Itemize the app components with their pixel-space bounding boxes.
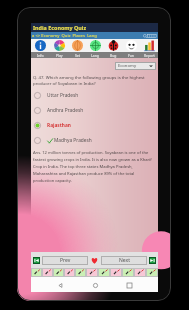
- button[interactable]: Play: [50, 39, 68, 58]
- staticText: Prev: [60, 257, 71, 264]
- button[interactable]: Report: [140, 39, 158, 58]
- button[interactable]: Recent apps: [124, 280, 134, 290]
- button[interactable]: [86, 268, 98, 277]
- button[interactable]: Home: [90, 280, 100, 290]
- staticText: Next: [119, 257, 130, 264]
- button[interactable]: [64, 268, 75, 277]
- staticText: Info: [37, 53, 44, 58]
- staticText: India Economy Quiz: [33, 24, 87, 31]
- button[interactable]: Rajasthan: [33, 118, 155, 133]
- button[interactable]: [31, 268, 42, 277]
- button[interactable]: First question: [33, 257, 40, 264]
- staticText: Q. 47. Which among the following groups …: [33, 74, 155, 86]
- staticText: Lang: [91, 53, 99, 58]
- button[interactable]: Set: [68, 39, 86, 58]
- staticText: Ans. 12 million tonnes of production. So…: [33, 150, 155, 184]
- button[interactable]: [98, 268, 110, 277]
- button[interactable]: Bug: [104, 39, 122, 58]
- button[interactable]: Economy: [115, 62, 156, 70]
- staticText: Play: [56, 53, 63, 58]
- button[interactable]: Uttar Pradesh: [33, 88, 155, 103]
- staticText: Madhya Pradesh: [54, 137, 92, 144]
- other: Search: [143, 34, 157, 38]
- staticText: Set: [75, 53, 80, 58]
- staticText: Rajasthan: [47, 122, 71, 129]
- button[interactable]: Andhra Pradesh: [33, 103, 155, 118]
- staticText: Economy: [118, 63, 137, 69]
- button[interactable]: [110, 268, 122, 277]
- button[interactable]: [146, 268, 158, 277]
- staticText: Fun: [128, 53, 134, 58]
- button[interactable]: Next: [101, 256, 147, 265]
- button[interactable]: Lang: [86, 39, 104, 58]
- button[interactable]: Prev: [42, 256, 88, 265]
- staticText: Uttar Pradesh: [47, 92, 79, 99]
- button[interactable]: Favourite: [91, 257, 98, 264]
- button[interactable]: Fun: [122, 39, 140, 58]
- button[interactable]: [122, 268, 134, 277]
- staticText: Andhra Pradesh: [47, 107, 84, 114]
- staticText: Bug: [110, 53, 117, 58]
- button[interactable]: a <> Economy Quiz Places Lang: [32, 33, 97, 39]
- button[interactable]: Madhya Pradesh: [33, 133, 155, 148]
- button[interactable]: [53, 268, 64, 277]
- staticText: Report: [144, 53, 155, 58]
- button[interactable]: [75, 268, 86, 277]
- button[interactable]: Back: [55, 280, 65, 290]
- button[interactable]: Info: [31, 39, 50, 58]
- button[interactable]: [134, 268, 146, 277]
- button[interactable]: Last question: [149, 257, 156, 264]
- button[interactable]: [42, 268, 53, 277]
